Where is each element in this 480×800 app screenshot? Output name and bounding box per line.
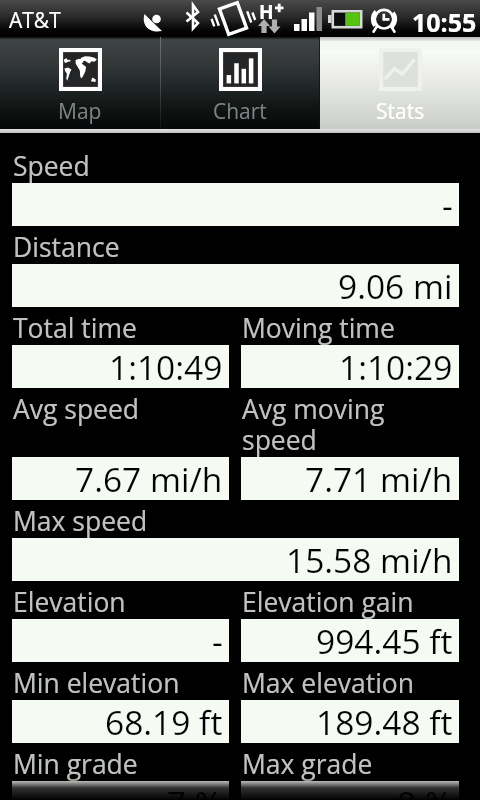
button[interactable]: 7.67 mi/h (12, 457, 229, 500)
staticText: - (212, 618, 223, 661)
staticText: - (442, 182, 453, 225)
button[interactable]: 7.71 mi/h (241, 457, 459, 500)
staticText: 1:10:29 (339, 344, 453, 387)
button[interactable]: 8 % (241, 781, 459, 800)
staticText: 8 % (397, 780, 453, 800)
staticText: 9.06 mi (338, 263, 453, 306)
staticText: 7.71 mi/h (305, 456, 453, 499)
staticText: -7 % (156, 780, 223, 800)
staticText: Map (58, 97, 102, 126)
staticText: Elevation gain (242, 584, 414, 620)
button[interactable]: Stats (320, 37, 480, 129)
staticText: 68.19 ft (105, 699, 223, 742)
button[interactable]: - (12, 619, 229, 662)
staticText: 1:10:49 (109, 344, 223, 387)
staticText: 189.48 ft (316, 699, 453, 742)
staticText: Stats (376, 97, 425, 126)
staticText: Speed (13, 148, 90, 184)
button[interactable]: 15.58 mi/h (12, 538, 459, 581)
button[interactable]: - (12, 183, 459, 226)
button[interactable]: 994.45 ft (241, 619, 459, 662)
staticText: Max grade (242, 746, 373, 782)
button[interactable]: Chart (160, 37, 320, 129)
button[interactable]: 9.06 mi (12, 264, 459, 307)
staticText: 994.45 ft (316, 618, 453, 661)
staticText: 7.67 mi/h (75, 456, 223, 499)
staticText: 10:55 (412, 5, 477, 39)
staticText: Distance (13, 229, 120, 265)
staticText: Moving time (242, 310, 395, 346)
button[interactable]: 1:10:29 (241, 345, 459, 388)
button[interactable]: 68.19 ft (12, 700, 229, 743)
staticText: Avg moving speed (242, 391, 460, 458)
button[interactable]: -7 % (12, 781, 229, 800)
staticText: Chart (213, 97, 267, 126)
staticText: Total time (13, 310, 137, 346)
staticText: H (259, 0, 274, 25)
staticText: Max elevation (242, 665, 415, 701)
staticText: Elevation (13, 584, 126, 620)
staticText: AT&T (9, 6, 61, 35)
staticText: Avg speed (13, 391, 140, 427)
staticText: Min elevation (13, 665, 180, 701)
staticText: Max speed (13, 503, 148, 539)
staticText: Min grade (13, 746, 138, 782)
staticText: 15.58 mi/h (286, 537, 453, 580)
button[interactable]: 189.48 ft (241, 700, 459, 743)
button[interactable]: 1:10:49 (12, 345, 229, 388)
button[interactable]: Map (0, 37, 160, 129)
